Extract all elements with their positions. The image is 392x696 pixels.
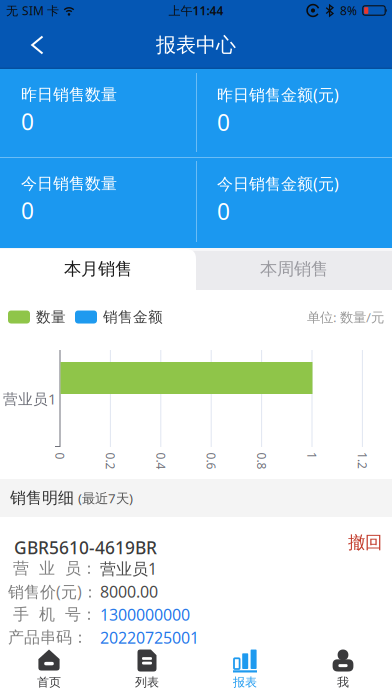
- staticText: 0: [21, 195, 34, 226]
- staticText: 报表中心: [156, 33, 236, 57]
- staticText: 上午11:44: [168, 2, 223, 18]
- staticText: 昨日销售金额(元): [217, 84, 339, 105]
- button[interactable]: 1300000000: [100, 604, 190, 625]
- staticText: 0.2: [102, 453, 119, 469]
- staticText: 我: [337, 675, 349, 690]
- staticText: 1.2: [354, 452, 371, 468]
- staticText: 0: [21, 106, 34, 137]
- staticText: GBR5610-4619BR: [14, 536, 157, 559]
- staticText: 0: [217, 196, 230, 226]
- staticText: 报表: [233, 675, 257, 690]
- staticText: 1300000000: [100, 604, 190, 625]
- button[interactable]: 撤回: [348, 537, 382, 558]
- button[interactable]: 我: [294, 648, 392, 696]
- staticText: 销售明细: [10, 488, 74, 508]
- staticText: 销售金额: [103, 308, 163, 326]
- staticText: 0.8: [253, 453, 270, 469]
- staticText: (最近7天): [78, 489, 133, 507]
- staticText: 手 机 号：: [8, 605, 97, 624]
- button[interactable]: 列表: [98, 648, 196, 696]
- staticText: 今日销售数量: [21, 174, 117, 193]
- staticText: 营 业 员：: [8, 559, 97, 578]
- button[interactable]: 本月销售: [0, 248, 196, 290]
- staticText: 营业员1: [3, 389, 56, 408]
- button[interactable]: 本周销售: [196, 248, 392, 290]
- staticText: 8%: [340, 2, 357, 18]
- staticText: 昨日销售数量: [21, 85, 117, 104]
- staticText: 本月销售: [64, 258, 132, 280]
- staticText: 单位: 数量/元: [307, 308, 384, 326]
- staticText: 20220725001: [100, 627, 199, 648]
- staticText: 本周销售: [260, 258, 328, 280]
- staticText: 无 SIM 卡: [6, 2, 59, 18]
- staticText: 销售价(元)：: [8, 581, 98, 602]
- staticText: 0.6: [203, 453, 220, 469]
- button[interactable]: 20220725001: [100, 627, 199, 648]
- staticText: 0: [217, 107, 230, 137]
- button[interactable]: 报表: [196, 648, 294, 696]
- staticText: 营业员1: [100, 558, 157, 579]
- staticText: 1: [308, 447, 315, 463]
- staticText: 今日销售金额(元): [217, 173, 339, 194]
- staticText: 首页: [37, 675, 61, 690]
- staticText: 0.4: [152, 453, 169, 469]
- button[interactable]: [0, 21, 44, 68]
- staticText: 产品串码：: [8, 628, 88, 647]
- staticText: 8000.00: [100, 581, 158, 602]
- staticText: 列表: [135, 675, 159, 690]
- staticText: 0: [56, 448, 63, 464]
- button[interactable]: 首页: [0, 648, 98, 696]
- staticText: 数量: [36, 308, 66, 326]
- staticText: 撤回: [348, 532, 382, 553]
